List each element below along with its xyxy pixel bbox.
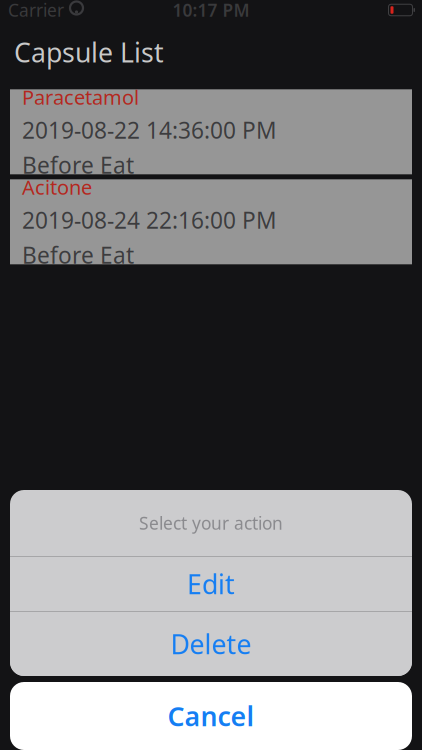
button[interactable]: Acitone	[10, 179, 412, 264]
button[interactable]: Edit	[10, 557, 412, 611]
staticText: Acitone	[22, 173, 92, 200]
staticText: 10:17 PM	[172, 0, 249, 21]
staticText: Before Eat	[22, 149, 134, 180]
staticText: 2019-08-22 14:36:00 PM	[22, 115, 277, 145]
staticText: Paracetamol	[22, 83, 139, 110]
staticText: Select your action	[139, 511, 283, 534]
staticText: Capsule List	[14, 34, 164, 70]
staticText: Edit	[187, 566, 235, 602]
button[interactable]: Paracetamol	[10, 89, 412, 174]
staticText: Cancel	[167, 698, 254, 734]
staticText: Carrier	[8, 0, 64, 21]
button[interactable]: Cancel	[10, 682, 412, 750]
staticText: 2019-08-24 22:16:00 PM	[22, 205, 277, 235]
staticText: Delete	[170, 626, 251, 662]
button[interactable]: Delete	[10, 612, 412, 676]
staticText: Before Eat	[22, 239, 134, 270]
